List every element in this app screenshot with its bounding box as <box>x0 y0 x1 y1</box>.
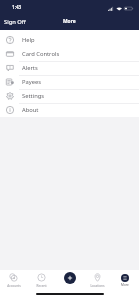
staticText: Alerts <box>22 64 38 72</box>
staticText: Help <box>22 36 35 44</box>
staticText: Payees <box>22 78 42 86</box>
button[interactable]: Payees <box>0 75 139 89</box>
button[interactable]: More <box>111 270 139 300</box>
staticText: Accounts <box>7 284 21 288</box>
button[interactable]: Add <box>64 272 76 284</box>
button[interactable]: Settings <box>0 89 139 103</box>
button[interactable]: About <box>0 103 139 117</box>
staticText: Settings <box>22 92 45 100</box>
staticText: Sign Off <box>4 18 26 26</box>
staticText: Recent <box>36 284 47 288</box>
staticText: More <box>63 18 76 25</box>
button[interactable]: Card Controls <box>0 47 139 61</box>
button[interactable]: Sign Off <box>0 15 30 30</box>
button[interactable]: Locations <box>83 270 111 300</box>
staticText: Card Controls <box>22 50 60 58</box>
staticText: More <box>121 283 129 287</box>
button[interactable]: Alerts <box>0 61 139 75</box>
button[interactable]: Help <box>0 33 139 47</box>
staticText: Locations <box>90 284 105 288</box>
staticText: About <box>22 106 39 114</box>
button[interactable]: Recent <box>27 270 55 300</box>
staticText: 1:43 <box>12 4 22 10</box>
button[interactable]: Accounts <box>0 270 27 300</box>
